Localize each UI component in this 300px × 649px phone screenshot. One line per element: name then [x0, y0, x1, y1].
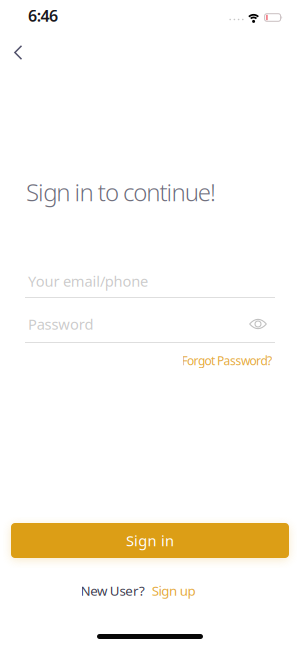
- button[interactable]: Sign up: [152, 582, 195, 599]
- button[interactable]: Show password: [249, 318, 275, 329]
- staticText: Password: [28, 314, 94, 334]
- button[interactable]: Forgot Password?: [181, 352, 272, 368]
- staticText: Your email/phone: [28, 271, 148, 291]
- staticText: Sign up: [152, 582, 195, 599]
- staticText: New User?: [80, 582, 148, 599]
- button[interactable]: Sign in: [11, 523, 289, 558]
- staticText: Sign in to continue!: [26, 176, 216, 208]
- staticText: Forgot Password?: [181, 352, 272, 368]
- button[interactable]: Back: [8, 41, 29, 64]
- staticText: Sign in: [126, 531, 174, 550]
- staticText: 6:46: [28, 5, 58, 26]
